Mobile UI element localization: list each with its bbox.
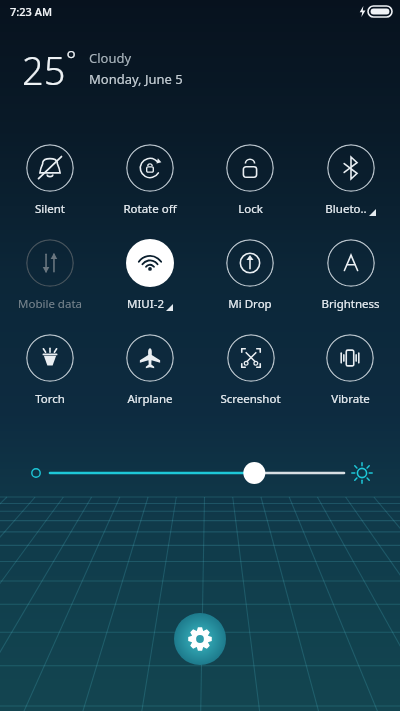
button[interactable]: Brightness slider [0,455,400,491]
staticText: Vibrate [331,391,370,407]
button[interactable]: Mi Drop [224,239,276,312]
staticText: Lock [238,201,263,217]
button[interactable]: Settings [174,613,226,665]
staticText: Airplane [127,391,173,407]
button[interactable]: MIUI-2 [124,239,176,312]
staticText: Blueto.. [325,201,367,217]
staticText: 7:23 AM [10,4,53,19]
staticText: MIUI-2 [127,296,164,312]
button[interactable]: Mobile data [16,239,84,312]
staticText: 25 [22,44,66,96]
button[interactable]: Torch [24,334,76,407]
staticText: Brightness [321,296,380,312]
button[interactable]: Brightness [319,239,382,312]
staticText: Mobile data [18,296,82,312]
staticText: Torch [35,391,65,407]
staticText: Screenshot [220,391,281,407]
staticText: Mi Drop [228,296,272,312]
button[interactable]: Vibrate [324,334,376,407]
staticText: Rotate off [123,201,177,217]
button[interactable]: Silent [24,144,76,217]
staticText: Silent [35,201,65,217]
button[interactable]: Airplane [124,334,176,407]
button[interactable]: Rotate off [121,144,179,217]
button[interactable]: Blueto.. [323,144,378,217]
staticText: ° [66,42,77,75]
staticText: Cloudy [89,49,132,67]
button[interactable]: Screenshot [218,334,283,407]
button[interactable]: Lock [224,144,276,217]
staticText: Monday, June 5 [89,70,183,88]
